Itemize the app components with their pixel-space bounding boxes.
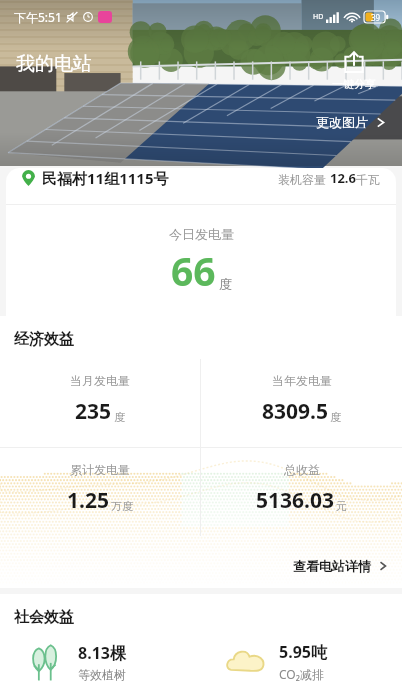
staticText: 5136.03 <box>256 486 334 515</box>
staticText: 5.95吨 <box>279 641 327 663</box>
staticText: HD <box>313 12 324 22</box>
staticText: 装机容量 <box>278 171 330 187</box>
staticText: 度 <box>114 410 125 424</box>
staticText: 下午5:51 <box>14 9 62 25</box>
staticText: 今日发电量 <box>169 226 234 242</box>
staticText: 8.13棵 <box>78 642 126 664</box>
staticText: 度 <box>330 410 341 424</box>
staticText: 万度 <box>111 499 133 513</box>
staticText: 当月发电量 <box>70 373 130 388</box>
staticText: 39 <box>371 12 381 23</box>
staticText: 经济效益 <box>14 330 74 349</box>
button[interactable]: 更改图片 <box>312 112 390 132</box>
button[interactable]: 一键分享 <box>328 46 380 95</box>
button[interactable]: 5.95吨 <box>201 639 402 684</box>
staticText: 当年发电量 <box>272 373 332 388</box>
staticText: 千瓦 <box>356 172 380 187</box>
staticText: CO₂减排 <box>279 666 324 682</box>
staticText: 民福村11组1115号 <box>42 168 169 188</box>
staticText: 66 <box>171 244 216 297</box>
button[interactable]: 民福村11组1115号 <box>6 168 396 204</box>
staticText: 查看电站详情 <box>293 558 371 574</box>
button[interactable]: 查看电站详情 <box>293 558 402 588</box>
button[interactable]: 8.13棵 <box>0 639 201 684</box>
staticText: 度 <box>219 276 232 292</box>
staticText: 一键分享 <box>332 77 376 91</box>
staticText: 1.25 <box>67 486 109 515</box>
staticText: 总收益 <box>284 462 320 477</box>
staticText: 累计发电量 <box>70 462 130 477</box>
staticText: 更改图片 <box>316 114 368 130</box>
staticText: 元 <box>336 499 347 513</box>
staticText: 8309.5 <box>262 397 328 426</box>
staticText: 我的电站 <box>16 52 92 76</box>
staticText: 社会效益 <box>14 608 74 627</box>
staticText: 12.6 <box>330 169 356 187</box>
staticText: 等效植树 <box>78 667 126 682</box>
staticText: 235 <box>75 397 112 426</box>
